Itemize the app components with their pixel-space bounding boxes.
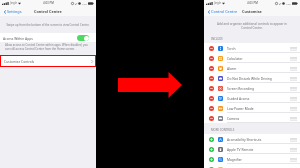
button[interactable]: Remove Screen Recording [204,83,300,93]
button[interactable]: Add Notes [204,164,300,168]
other: Remove Alarm [209,66,214,71]
other: Remove Low Power Mode [209,106,214,111]
button[interactable]: Add Accessibility Shortcuts [204,134,300,144]
staticText: INCLUDE [211,37,223,41]
staticText: 4:03 PM [43,1,54,5]
other: Remove Torch [209,46,214,51]
staticText: Alarm [227,66,237,70]
staticText: Add and organise additional controls to … [204,22,300,30]
staticText: Camera [227,116,240,120]
staticText: Jingle [10,1,17,5]
other: Reorder Alarm [290,67,297,70]
other: Add Magnifier [209,157,214,162]
button[interactable]: Customise Controls [1,56,95,66]
staticText: 73% [82,2,87,5]
button[interactable]: Remove Alarm [204,63,300,73]
staticText: Control Centre [211,9,238,14]
staticText: 4:03 PM [247,1,258,5]
other: Reorder Do Not Disturb While Driving [290,77,297,80]
other: Reorder Low Power Mode [290,107,297,110]
staticText: Customise [242,9,262,14]
staticText: Allow access to Control Centre within ap… [5,43,88,51]
other: Reorder Calculator [290,57,297,60]
staticText: Jingle [214,1,221,5]
other: Reorder Camera [290,117,297,120]
staticText: 73% [286,2,291,5]
other: Remove Do Not Disturb While Driving [209,76,214,81]
staticText: Calculator [227,56,243,60]
other: Remove Guided Access [209,96,214,101]
staticText: Control Centre [34,9,62,14]
other: Reorder Guided Access [290,97,297,100]
button[interactable]: Remove Camera [204,113,300,123]
staticText: MORE CONTROLS [211,128,235,132]
other: Reorder Screen Recording [290,87,297,90]
button[interactable]: Remove Torch [204,43,300,53]
button[interactable]: Remove Calculator [204,53,300,63]
button[interactable]: Remove Low Power Mode [204,103,300,113]
staticText: Low Power Mode [227,106,254,110]
staticText: Swipe up from the bottom of the screen t… [6,23,90,27]
staticText: Do Not Disturb While Driving [227,76,272,80]
staticText: Torch [227,46,236,50]
other: Reorder Torch [290,47,297,50]
button[interactable]: Control Centre [208,9,238,14]
staticText: Guided Access [227,96,250,100]
other: Reorder Accessibility Shortcuts [290,138,297,141]
other: Add Apple TV Remote [209,147,214,152]
other: Remove Calculator [209,56,214,61]
other: Remove Camera [209,116,214,121]
button[interactable]: Access Within Apps [0,33,96,42]
button[interactable]: Remove Guided Access [204,93,300,103]
other: Remove Screen Recording [209,86,214,91]
staticText: Access Within Apps [3,36,33,40]
button[interactable]: Settings [4,9,22,14]
other: Add Notes [209,167,214,168]
staticText: Settings [7,9,22,14]
button[interactable]: Add Magnifier [204,154,300,164]
staticText: Screen Recording [227,86,255,90]
staticText: Apple TV Remote [227,147,254,151]
other: Reorder Magnifier [290,158,297,161]
button[interactable]: Remove Do Not Disturb While Driving [204,73,300,83]
staticText: Customise Controls [4,59,35,63]
other: Add Accessibility Shortcuts [209,137,214,142]
other: Reorder Apple TV Remote [290,148,297,151]
staticText: Accessibility Shortcuts [227,137,262,141]
staticText: Magnifier [227,157,242,161]
button[interactable]: Add Apple TV Remote [204,144,300,154]
